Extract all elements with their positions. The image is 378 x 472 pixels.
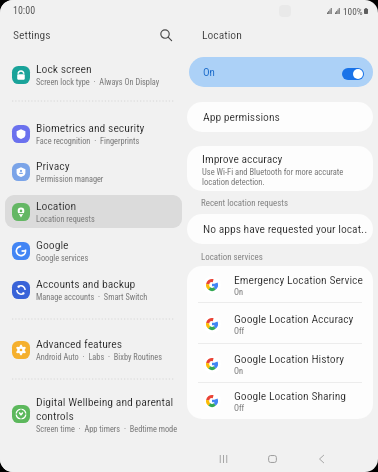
staticText: Off [234,326,245,336]
button[interactable]: Advanced features [0,333,187,366]
staticText: Settings [13,28,51,42]
staticText: Off [234,403,245,413]
staticText: Location requests [36,214,95,224]
button[interactable]: On [189,57,373,87]
button[interactable]: Home [258,445,286,472]
button[interactable]: Lock screen [0,58,187,91]
button[interactable]: Biometrics and security [0,117,187,150]
staticText: On [234,287,244,297]
button[interactable]: Digital Wellbeing and parental controls [0,395,187,433]
staticText: Use Wi-Fi and Bluetooth for more accurat… [202,167,365,187]
staticText: 10:00 [13,5,36,17]
staticText: Improve accuracy [202,152,283,166]
staticText: Lock screen [36,62,92,76]
staticText: Screen lock type · Always On Display [36,77,160,87]
button[interactable]: Recents [209,445,237,472]
staticText: Advanced features [36,337,123,351]
staticText: Face recognition · Fingerprints [36,136,140,146]
staticText: Screen time · App timers · Bedtime mode [36,424,178,433]
button[interactable]: Improve accuracy [187,146,373,191]
staticText: Google [36,238,69,252]
staticText: Permission manager [36,174,104,184]
staticText: On [234,366,244,376]
button[interactable]: Google Location History [187,344,373,383]
staticText: No apps have requested your locat.. [203,222,368,236]
staticText: 100% [343,6,363,17]
staticText: App permissions [203,110,280,124]
staticText: Google Location Accuracy [234,312,354,326]
staticText: Google Location Sharing [234,389,347,403]
staticText: Digital Wellbeing and parental controls [36,395,174,423]
staticText: Emergency Location Service [234,273,363,287]
staticText: Recent location requests [201,198,288,208]
button[interactable]: Accounts and backup [0,273,187,306]
button[interactable]: Google Location Sharing [187,383,373,419]
button[interactable]: Privacy [0,155,187,188]
button[interactable]: Google [0,234,187,267]
staticText: On [203,66,215,79]
button[interactable]: Google Location Accuracy [187,303,373,344]
button[interactable]: Location [0,195,187,228]
staticText: Accounts and backup [36,277,136,291]
staticText: Android Auto · Labs · Bixby Routines [36,352,162,362]
staticText: Location [36,199,77,213]
button[interactable]: Search [154,23,178,47]
staticText: Privacy [36,159,70,173]
staticText: Google services [36,253,89,263]
staticText: Biometrics and security [36,121,145,135]
staticText: Location [202,28,242,42]
staticText: Google Location History [234,352,345,366]
button[interactable]: Emergency Location Service [187,266,373,303]
staticText: Manage accounts · Smart Switch [36,292,148,302]
button[interactable]: No apps have requested your locat.. [187,214,373,244]
staticText: Location services [201,252,263,262]
button[interactable]: Back [307,445,335,472]
button[interactable]: App permissions [187,102,373,132]
